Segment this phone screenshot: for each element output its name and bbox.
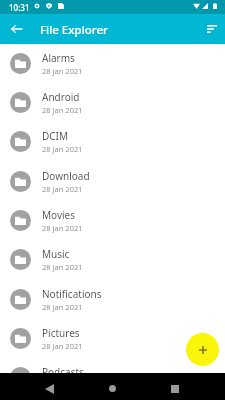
- button[interactable]: Alarms: [0, 44, 225, 83]
- button[interactable]: Back: [3, 16, 29, 42]
- staticText: 28 Jan 2021: [42, 302, 83, 312]
- button[interactable]: Podcasts: [0, 358, 225, 397]
- staticText: 28 Jan 2021: [42, 223, 83, 233]
- staticText: Download: [42, 169, 90, 183]
- button[interactable]: DCIM: [0, 122, 225, 161]
- button[interactable]: Add: [186, 333, 219, 366]
- staticText: File Explorer: [40, 22, 108, 38]
- button[interactable]: Back: [37, 376, 62, 400]
- button[interactable]: Sort: [199, 16, 225, 42]
- staticText: 10:31: [9, 2, 30, 13]
- staticText: Music: [42, 247, 70, 261]
- staticText: 28 Jan 2021: [42, 66, 83, 76]
- staticText: 28 Jan 2021: [42, 380, 83, 390]
- button[interactable]: Movies: [0, 201, 225, 240]
- staticText: 28 Jan 2021: [42, 184, 83, 194]
- staticText: Alarms: [42, 51, 75, 65]
- staticText: 28 Jan 2021: [42, 105, 83, 115]
- button[interactable]: Notifications: [0, 280, 225, 319]
- button[interactable]: Download: [0, 162, 225, 201]
- staticText: Movies: [42, 208, 76, 222]
- staticText: 28 Jan 2021: [42, 144, 83, 154]
- button[interactable]: Music: [0, 240, 225, 279]
- button[interactable]: Pictures: [0, 319, 225, 358]
- button[interactable]: Android: [0, 83, 225, 122]
- staticText: Notifications: [42, 287, 102, 301]
- staticText: DCIM: [42, 129, 69, 143]
- staticText: 28 Jan 2021: [42, 262, 83, 272]
- staticText: Android: [42, 90, 80, 104]
- button[interactable]: Recents: [162, 376, 187, 400]
- button[interactable]: Home: [100, 376, 125, 400]
- staticText: Podcasts: [42, 365, 84, 379]
- staticText: 28 Jan 2021: [42, 341, 83, 351]
- staticText: Pictures: [42, 326, 80, 340]
